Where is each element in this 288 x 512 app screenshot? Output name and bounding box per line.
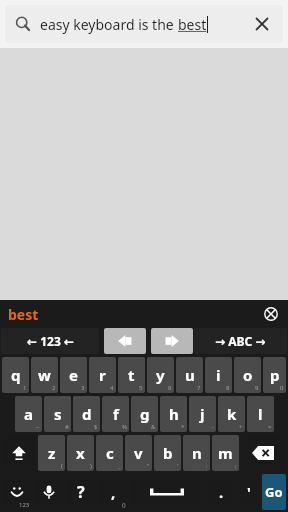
button[interactable]: .: [206, 474, 236, 510]
staticText: _: [118, 462, 121, 470]
button[interactable]: Go: [262, 474, 286, 510]
button[interactable]: v: [125, 435, 152, 471]
staticText: c: [106, 443, 114, 463]
button[interactable]: Voice input: [34, 474, 64, 510]
staticText: g: [140, 404, 150, 424]
staticText: z: [48, 443, 56, 463]
staticText: n: [192, 443, 202, 463]
staticText: d: [82, 404, 92, 424]
button[interactable]: y: [147, 357, 174, 393]
button[interactable]: i: [205, 357, 232, 393]
staticText: +: [239, 423, 243, 431]
button[interactable]: w: [31, 357, 58, 393]
staticText: 1: [23, 384, 27, 392]
button[interactable]: t: [118, 357, 145, 393]
staticText: $: [94, 423, 98, 431]
staticText: v: [134, 443, 143, 463]
button[interactable]: Move left: [104, 328, 146, 354]
staticText: p: [270, 365, 280, 385]
button[interactable]: c: [96, 435, 123, 471]
staticText: a: [24, 404, 33, 424]
button[interactable]: x: [67, 435, 94, 471]
button[interactable]: l: [247, 396, 274, 432]
button[interactable]: g: [131, 396, 158, 432]
staticText: i: [216, 365, 221, 385]
button[interactable]: n: [183, 435, 210, 471]
staticText: ;: [235, 462, 237, 470]
staticText: #: [65, 423, 69, 431]
button[interactable]: s: [44, 396, 71, 432]
staticText: ': [247, 483, 251, 502]
staticText: e: [69, 365, 78, 385]
staticText: 2: [52, 384, 56, 392]
button[interactable]: ,: [98, 474, 128, 510]
button[interactable]: a: [15, 396, 42, 432]
button[interactable]: q: [2, 357, 29, 393]
staticText: .: [219, 482, 224, 502]
button[interactable]: Clear: [245, 7, 279, 41]
button[interactable]: Space: [130, 474, 204, 510]
button[interactable]: Emoji: [2, 474, 32, 510]
button[interactable]: ?: [66, 474, 96, 510]
staticText: h: [169, 404, 179, 424]
staticText: best: [8, 305, 39, 324]
staticText: 4: [110, 384, 114, 392]
staticText: b: [163, 443, 173, 463]
button[interactable]: k: [218, 396, 245, 432]
staticText: f: [113, 404, 119, 424]
staticText: 123: [19, 501, 30, 509]
staticText: :: [206, 462, 208, 470]
staticText: → ABC →: [215, 333, 266, 349]
staticText: -: [212, 423, 214, 431]
staticText: easy keyboard is the: [40, 15, 178, 34]
staticText: w: [38, 365, 51, 385]
staticText: u: [185, 365, 195, 385]
staticText: s: [54, 404, 62, 424]
staticText: m: [218, 443, 233, 463]
staticText: y: [156, 365, 165, 385]
staticText: 0: [280, 384, 284, 392]
button[interactable]: ← 123 ←: [1, 328, 99, 354]
button[interactable]: Close suggestions: [260, 303, 282, 325]
button[interactable]: f: [102, 396, 129, 432]
staticText: Go: [265, 483, 283, 501]
staticText: ): [90, 462, 92, 470]
staticText: 7: [197, 384, 201, 392]
staticText: *: [181, 423, 185, 431]
staticText: ,: [111, 482, 116, 502]
button[interactable]: b: [154, 435, 181, 471]
staticText: ": [147, 462, 150, 470]
staticText: ': [177, 462, 179, 470]
button[interactable]: easy keyboard is the: [5, 5, 283, 43]
button[interactable]: o: [234, 357, 261, 393]
staticText: 9: [255, 384, 259, 392]
staticText: x: [76, 443, 85, 463]
button[interactable]: h: [160, 396, 187, 432]
button[interactable]: j: [189, 396, 216, 432]
staticText: ← 123 ←: [27, 333, 74, 349]
staticText: 8: [226, 384, 230, 392]
button[interactable]: p: [263, 357, 286, 393]
button[interactable]: z: [38, 435, 65, 471]
staticText: q: [11, 365, 21, 385]
button[interactable]: r: [89, 357, 116, 393]
button[interactable]: u: [176, 357, 203, 393]
staticText: ~: [36, 423, 40, 431]
button[interactable]: → ABC →: [194, 328, 287, 354]
button[interactable]: ': [238, 474, 260, 510]
staticText: ?: [77, 481, 85, 503]
button[interactable]: Backspace: [241, 435, 285, 471]
button[interactable]: e: [60, 357, 87, 393]
staticText: l: [258, 404, 263, 424]
staticText: %: [122, 423, 127, 431]
button[interactable]: d: [73, 396, 100, 432]
staticText: (): [122, 501, 126, 509]
staticText: 6: [168, 384, 172, 392]
staticText: o: [243, 365, 253, 385]
button[interactable]: Shift: [2, 435, 36, 471]
staticText: r: [99, 365, 106, 385]
staticText: t: [128, 365, 135, 385]
button[interactable]: m: [212, 435, 239, 471]
button[interactable]: Move right: [151, 328, 193, 354]
staticText: k: [227, 404, 237, 424]
